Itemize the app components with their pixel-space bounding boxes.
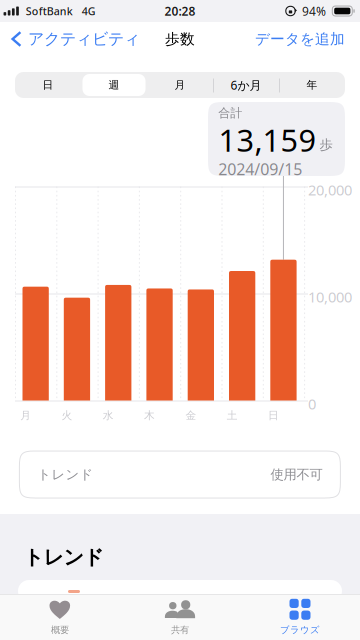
- staticText: 0: [308, 394, 316, 413]
- staticText: アクティビティ: [28, 29, 140, 49]
- staticText: ブラウズ: [280, 624, 320, 636]
- staticText: トレンド: [37, 466, 93, 483]
- staticText: 共有: [171, 624, 189, 636]
- staticText: 金: [185, 409, 196, 422]
- staticText: 合計: [218, 106, 242, 120]
- staticText: 20:28: [164, 3, 195, 19]
- staticText: 概要: [51, 624, 69, 636]
- staticText: 歩: [319, 136, 332, 153]
- staticText: 歩数: [165, 30, 195, 48]
- staticText: トレンド: [23, 545, 103, 570]
- button[interactable]: データを追加: [249, 25, 360, 53]
- staticText: 週: [108, 78, 119, 91]
- staticText: 日: [268, 409, 279, 422]
- staticText: 使用不可: [270, 466, 322, 483]
- staticText: 月: [20, 409, 31, 422]
- staticText: 水: [103, 409, 114, 422]
- staticText: 94%: [296, 3, 332, 19]
- staticText: 2024/09/15: [218, 158, 302, 180]
- button[interactable]: 週: [81, 72, 147, 98]
- button[interactable]: 概要: [0, 595, 120, 640]
- staticText: 10,000: [308, 287, 352, 306]
- button[interactable]: トレンド: [19, 451, 340, 498]
- button[interactable]: ブラウズ: [240, 595, 360, 640]
- staticText: 4G: [73, 4, 96, 18]
- staticText: 月: [174, 78, 185, 91]
- staticText: 13,159: [218, 119, 316, 160]
- staticText: 6か月: [230, 77, 261, 93]
- button[interactable]: 共有: [120, 595, 240, 640]
- staticText: 木: [144, 409, 155, 422]
- staticText: データを追加: [255, 30, 345, 48]
- button[interactable]: 年: [279, 72, 345, 98]
- staticText: 火: [61, 409, 72, 422]
- button[interactable]: 6か月: [213, 72, 279, 98]
- button[interactable]: アクティビティ: [0, 24, 146, 54]
- button[interactable]: 月: [147, 72, 213, 98]
- staticText: 日: [42, 78, 53, 91]
- staticText: 年: [306, 78, 317, 91]
- button[interactable]: 日: [15, 72, 81, 98]
- staticText: 20,000: [308, 180, 352, 199]
- staticText: 土: [227, 409, 238, 422]
- staticText: SoftBank: [20, 4, 73, 18]
